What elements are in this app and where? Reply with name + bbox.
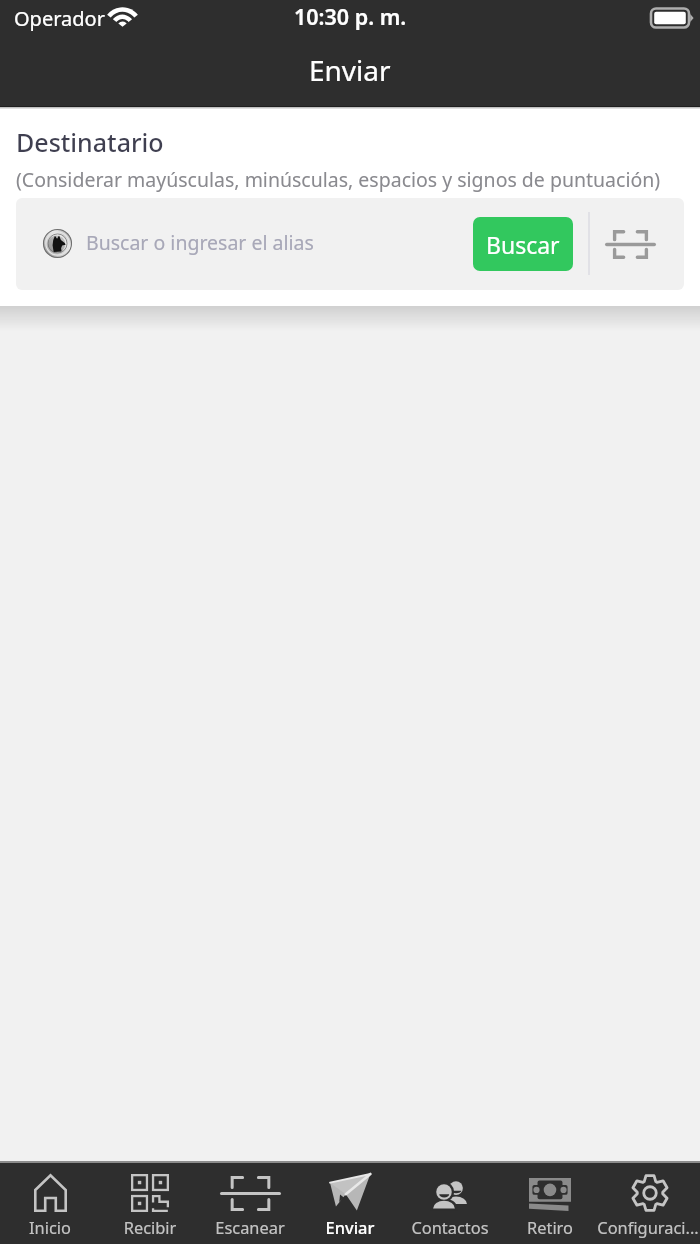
button[interactable]: Escanear — [200, 1163, 300, 1244]
staticText: Inicio — [0, 1216, 100, 1238]
staticText: (Considerar mayúsculas, minúsculas, espa… — [16, 166, 661, 193]
button[interactable]: Enviar — [300, 1163, 400, 1244]
button[interactable]: Recibir — [100, 1163, 200, 1244]
staticText: Configuraci... — [597, 1216, 697, 1238]
staticText: Buscar — [486, 229, 560, 260]
button[interactable]: Configuraci... — [600, 1163, 700, 1244]
staticText: Operador — [14, 5, 105, 32]
staticText: Destinatario — [16, 125, 164, 159]
staticText: Retiro — [500, 1216, 600, 1238]
staticText: Contactos — [400, 1216, 500, 1238]
staticText: Recibir — [100, 1216, 200, 1238]
staticText: Escanear — [200, 1216, 300, 1238]
button[interactable]: Inicio — [0, 1163, 100, 1244]
staticText: Enviar — [309, 51, 391, 89]
button[interactable]: Retiro — [500, 1163, 600, 1244]
staticText: Enviar — [300, 1216, 400, 1238]
staticText: 10:30 p. m. — [294, 2, 407, 31]
staticText: Buscar o ingresar el alias — [86, 229, 314, 256]
button[interactable]: Contactos — [400, 1163, 500, 1244]
button[interactable]: Buscar — [473, 217, 573, 271]
button[interactable]: Escanear código — [600, 215, 660, 273]
button[interactable]: Buscar o ingresar el alias — [16, 198, 466, 290]
